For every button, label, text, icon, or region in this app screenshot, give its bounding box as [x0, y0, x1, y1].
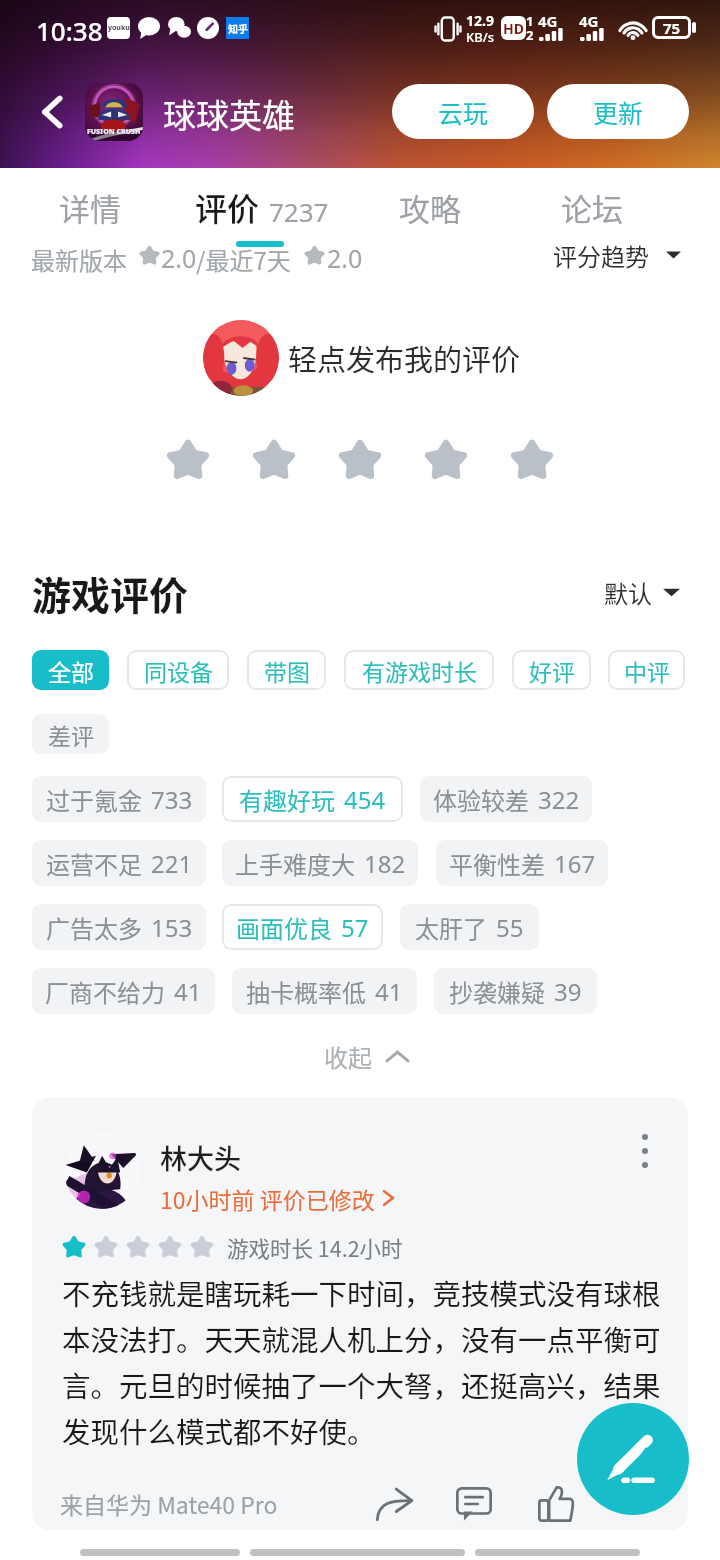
- staticText: 41: [174, 975, 202, 1008]
- staticText: 12.9: [466, 11, 494, 30]
- button[interactable]: Like: [528, 1476, 584, 1530]
- button[interactable]: [10, 172, 170, 228]
- staticText: 广告太多: [46, 910, 142, 945]
- button[interactable]: 广告太多: [32, 904, 206, 950]
- button[interactable]: [350, 172, 510, 228]
- button[interactable]: [167, 172, 327, 228]
- button[interactable]: 默认: [604, 572, 680, 612]
- button[interactable]: Comment: [446, 1476, 502, 1530]
- staticText: 好评: [529, 654, 575, 687]
- staticText: 来自华为 Mate40 Pro: [60, 1487, 278, 1520]
- staticText: 轻点发布我的评价: [288, 337, 521, 379]
- staticText: 评分趋势: [553, 238, 649, 273]
- button[interactable]: 差评: [32, 714, 109, 754]
- staticText: 运营不足: [46, 846, 142, 881]
- button[interactable]: 平衡性差: [436, 840, 608, 886]
- button[interactable]: 画面优良: [222, 904, 383, 950]
- staticText: 2.0: [161, 241, 197, 275]
- button[interactable]: 好评: [512, 650, 591, 690]
- staticText: 攻略: [399, 185, 461, 230]
- staticText: 平衡性差: [449, 846, 545, 881]
- button[interactable]: More options: [620, 1126, 670, 1176]
- staticText: 55: [496, 911, 524, 944]
- button[interactable]: 抄袭嫌疑: [434, 968, 597, 1014]
- staticText: /最近7天: [196, 242, 291, 277]
- staticText: 10:38: [36, 13, 103, 48]
- staticText: 详情: [59, 185, 121, 230]
- staticText: 454: [344, 783, 386, 816]
- button[interactable]: [513, 172, 673, 228]
- button[interactable]: 收起: [324, 1034, 409, 1078]
- staticText: KB/s: [466, 28, 495, 46]
- button[interactable]: Share: [366, 1476, 422, 1530]
- staticText: 全部: [48, 654, 94, 687]
- button[interactable]: 云玩: [392, 84, 534, 139]
- staticText: 带图: [264, 654, 310, 687]
- staticText: youku: [108, 23, 130, 33]
- staticText: 39: [554, 975, 582, 1008]
- button[interactable]: 抽卡概率低: [232, 968, 417, 1014]
- button[interactable]: Rate 5 stars: [490, 420, 574, 500]
- button[interactable]: 评分趋势: [553, 235, 681, 275]
- staticText: 最新版本: [31, 242, 127, 277]
- staticText: 林大头: [160, 1138, 241, 1177]
- staticText: 游戏时长 14.2小时: [227, 1232, 403, 1263]
- staticText: 75: [663, 18, 681, 38]
- button[interactable]: 同设备: [127, 650, 229, 690]
- staticText: 57: [341, 911, 369, 944]
- staticText: 太肝了: [415, 910, 487, 945]
- button[interactable]: Rate 1 stars: [146, 420, 230, 500]
- button[interactable]: 更新: [547, 84, 689, 139]
- staticText: 不充钱就是瞎玩耗一下时间，竞技模式没有球根本没法打。天天就混人机上分，没有一点平…: [62, 1272, 670, 1451]
- button[interactable]: 体验较差: [420, 776, 592, 822]
- staticText: 322: [538, 783, 580, 816]
- staticText: 默认: [604, 575, 652, 610]
- button[interactable]: 太肝了: [400, 904, 539, 950]
- staticText: 41: [375, 975, 403, 1008]
- button[interactable]: 有趣好玩: [222, 776, 403, 822]
- staticText: 评价: [195, 184, 260, 230]
- button[interactable]: 10小时前 评价已修改: [160, 1181, 394, 1215]
- staticText: 收起: [324, 1039, 372, 1074]
- staticText: 更新: [593, 94, 644, 130]
- button[interactable]: 上手难度大: [222, 840, 418, 886]
- staticText: 10小时前 评价已修改: [160, 1182, 375, 1215]
- button[interactable]: 轻点发布我的评价: [195, 312, 535, 404]
- button[interactable]: 带图: [247, 650, 326, 690]
- staticText: 733: [151, 783, 193, 816]
- button[interactable]: 过于氪金: [32, 776, 206, 822]
- staticText: 论坛: [561, 185, 623, 230]
- button[interactable]: Rate 4 stars: [404, 420, 488, 500]
- staticText: 知乎: [228, 21, 248, 35]
- staticText: 7237: [269, 194, 329, 229]
- button[interactable]: App icon: [85, 83, 143, 141]
- staticText: 中评: [624, 654, 670, 687]
- button[interactable]: 有游戏时长: [344, 650, 494, 690]
- staticText: 2.0: [327, 241, 363, 275]
- staticText: 差评: [48, 718, 94, 751]
- button[interactable]: 中评: [608, 650, 685, 690]
- button[interactable]: Avatar of 林大头: [64, 1133, 140, 1209]
- staticText: 游戏评价: [32, 565, 189, 621]
- button[interactable]: Back: [26, 85, 80, 139]
- staticText: 2: [526, 26, 534, 44]
- button[interactable]: 厂商不给力: [32, 968, 215, 1014]
- button[interactable]: 运营不足: [32, 840, 206, 886]
- staticText: 同设备: [144, 654, 213, 687]
- staticText: HD: [503, 19, 524, 38]
- button[interactable]: Rate 3 stars: [318, 420, 402, 500]
- staticText: 221: [151, 847, 193, 880]
- staticText: 4G: [579, 11, 599, 31]
- staticText: 4G: [538, 11, 558, 31]
- staticText: 抽卡概率低: [246, 974, 366, 1009]
- staticText: 167: [554, 847, 596, 880]
- staticText: 球球英雄: [163, 90, 295, 138]
- staticText: 有趣好玩: [239, 782, 335, 817]
- staticText: 1: [526, 12, 534, 30]
- button[interactable]: 全部: [32, 650, 109, 690]
- button[interactable]: Write a review: [577, 1403, 689, 1515]
- button[interactable]: Rate 2 stars: [232, 420, 316, 500]
- staticText: FUSION CRUSH: [87, 127, 141, 137]
- staticText: 有游戏时长: [362, 654, 477, 687]
- staticText: 云玩: [438, 94, 489, 130]
